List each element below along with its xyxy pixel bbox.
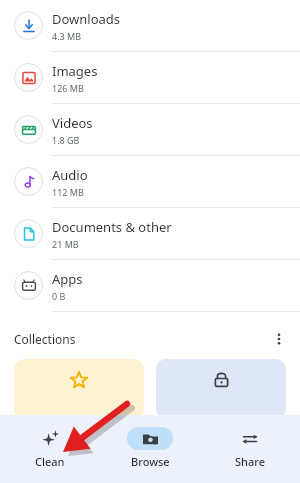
staticText: Browse [131, 454, 170, 469]
staticText: Audio [52, 166, 88, 184]
staticText: Videos [52, 114, 93, 132]
staticText: Documents & other [52, 218, 172, 236]
staticText: Images [52, 62, 98, 80]
button[interactable]: Clean [0, 415, 100, 483]
button[interactable]: Audio [0, 156, 300, 207]
button[interactable]: Browse [100, 415, 200, 483]
staticText: 0 B [52, 290, 66, 302]
button[interactable]: Videos [0, 104, 300, 155]
button[interactable]: Downloads [0, 0, 300, 51]
staticText: Collections [14, 331, 76, 347]
staticText: 1.8 GB [52, 134, 80, 146]
button[interactable]: Documents & other [0, 208, 300, 259]
staticText: 4.3 MB [52, 30, 82, 42]
staticText: Apps [52, 270, 83, 288]
button[interactable] [156, 359, 286, 419]
button[interactable] [14, 359, 144, 419]
button[interactable]: Share [200, 415, 300, 483]
staticText: Share [235, 454, 265, 469]
staticText: Downloads [52, 10, 121, 28]
staticText: 21 MB [52, 238, 79, 250]
staticText: Clean [35, 454, 65, 469]
staticText: 112 MB [52, 186, 84, 198]
button[interactable]: Apps [0, 260, 300, 311]
staticText: 126 MB [52, 82, 84, 94]
button[interactable]: More options [266, 326, 292, 352]
button[interactable]: Images [0, 52, 300, 103]
